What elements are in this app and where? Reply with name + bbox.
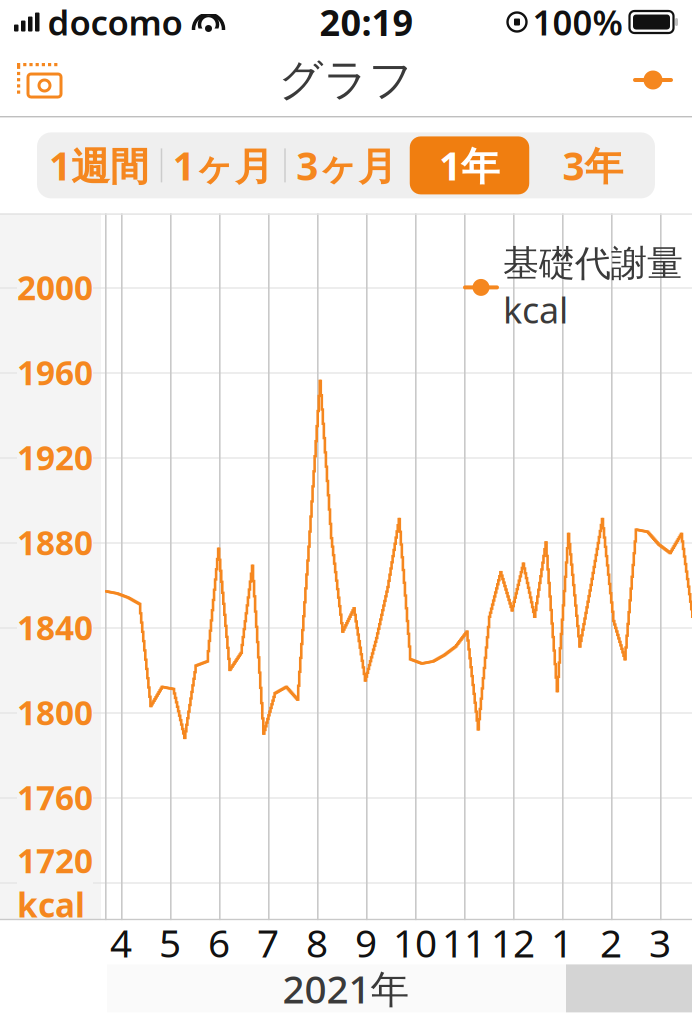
staticText: 1760 <box>17 775 93 820</box>
button[interactable]: 写真を撮る <box>8 51 70 109</box>
staticText: 1週間 <box>49 140 149 191</box>
staticText: 1年 <box>439 140 500 191</box>
staticText: 3ヶ月 <box>296 140 397 191</box>
staticText: 10 <box>393 917 437 968</box>
staticText: 11 <box>442 917 486 968</box>
staticText: 6 <box>208 917 230 968</box>
button[interactable]: 1ヶ月 <box>162 132 284 198</box>
staticText: 1880 <box>17 520 93 565</box>
staticText: 8 <box>306 917 328 968</box>
staticText: 1920 <box>17 435 93 480</box>
staticText: 基礎代謝量 kcal <box>503 241 683 333</box>
staticText: 3年 <box>562 140 623 191</box>
staticText: 1ヶ月 <box>173 140 274 191</box>
staticText: 7 <box>257 917 279 968</box>
staticText: 20:19 <box>319 0 413 46</box>
button[interactable]: 表示設定 <box>622 51 684 109</box>
staticText: 9 <box>355 917 377 968</box>
staticText: 1 <box>551 917 573 968</box>
staticText: 2021年 <box>282 963 409 1014</box>
button[interactable]: 1年 <box>408 132 531 198</box>
button[interactable]: 3年 <box>531 132 655 198</box>
staticText: 2 <box>600 917 622 968</box>
staticText: グラフ <box>278 53 413 107</box>
staticText: 3 <box>649 917 671 968</box>
button[interactable]: 3ヶ月 <box>286 132 408 198</box>
staticText: 1720kcal <box>17 838 93 927</box>
staticText: 2000 <box>17 265 93 310</box>
staticText: 1840 <box>17 605 93 650</box>
staticText: 1800 <box>17 690 93 735</box>
button[interactable]: 1週間 <box>37 132 161 198</box>
staticText: docomo <box>47 0 182 45</box>
staticText: 12 <box>491 917 535 968</box>
staticText: 5 <box>159 917 181 968</box>
staticText: 100% <box>532 0 622 45</box>
staticText: 1960 <box>17 350 93 395</box>
staticText: 4 <box>110 917 132 968</box>
